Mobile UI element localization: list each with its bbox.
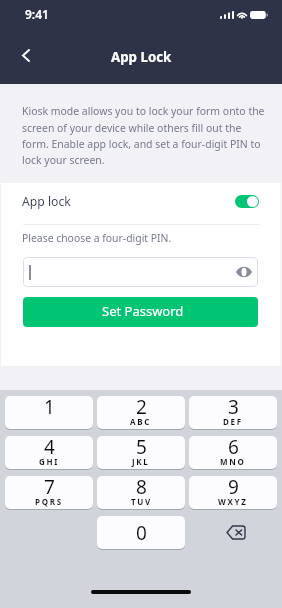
staticText: 4 xyxy=(44,436,55,460)
staticText: 8 xyxy=(136,476,147,500)
staticText: DEF xyxy=(223,416,243,427)
button[interactable]: 1 xyxy=(5,396,93,429)
staticText: 9:41 xyxy=(25,6,49,22)
button[interactable]: Delete xyxy=(189,516,277,549)
button[interactable]: Back xyxy=(12,41,40,69)
staticText: App lock xyxy=(22,193,71,210)
staticText: WXYZ xyxy=(218,496,248,507)
staticText: App Lock xyxy=(111,48,172,66)
staticText: Set Password xyxy=(102,302,184,320)
staticText: ABC xyxy=(130,416,152,427)
staticText: 0 xyxy=(136,520,147,546)
button[interactable]: Set Password xyxy=(23,297,258,327)
staticText: GHI xyxy=(39,456,60,467)
staticText: 3 xyxy=(228,396,239,420)
button[interactable]: 8 xyxy=(97,476,185,509)
button[interactable]: 0 xyxy=(97,516,185,549)
staticText: 1 xyxy=(44,396,55,420)
staticText: Please choose a four-digit PIN. xyxy=(22,231,172,245)
button[interactable]: 5 xyxy=(97,436,185,469)
staticText: TUV xyxy=(131,496,152,507)
staticText: 6 xyxy=(228,436,239,460)
staticText: JKL xyxy=(132,456,150,467)
staticText: PQRS xyxy=(35,496,63,507)
button[interactable]: 9 xyxy=(189,476,277,509)
staticText: MNO xyxy=(220,456,246,467)
button[interactable]: 3 xyxy=(189,396,277,429)
button[interactable]: App lock xyxy=(0,183,282,224)
staticText: 9 xyxy=(228,476,239,500)
button[interactable]: 6 xyxy=(189,436,277,469)
button[interactable]: 2 xyxy=(97,396,185,429)
button[interactable]: 4 xyxy=(5,436,93,469)
button[interactable]: 7 xyxy=(5,476,93,509)
staticText: Kiosk mode allows you to lock your form … xyxy=(22,104,265,167)
staticText: 5 xyxy=(136,436,147,460)
button[interactable]: Show PIN xyxy=(23,257,258,287)
staticText: 7 xyxy=(44,476,55,500)
staticText: 2 xyxy=(136,396,147,420)
button[interactable]: Show PIN xyxy=(235,263,253,281)
